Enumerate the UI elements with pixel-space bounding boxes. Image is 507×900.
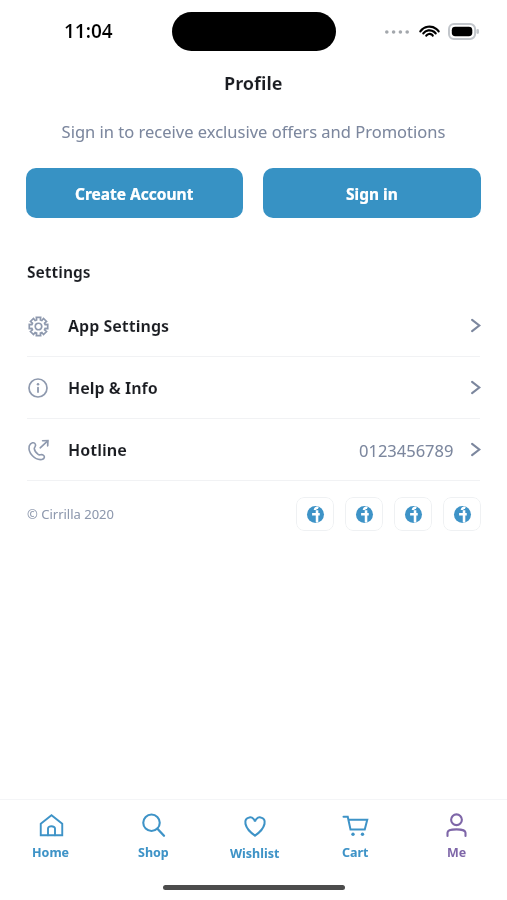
- button[interactable]: Help & Info: [0, 357, 507, 418]
- staticText: Wishlist: [230, 845, 280, 862]
- staticText: Help & Info: [68, 377, 158, 399]
- staticText: Sign in: [346, 183, 398, 204]
- button[interactable]: App Settings: [0, 295, 507, 356]
- button[interactable]: Wishlist: [204, 800, 305, 874]
- button[interactable]: Sign in: [263, 168, 481, 218]
- button[interactable]: Home: [0, 800, 102, 874]
- button[interactable]: Cart: [305, 800, 406, 874]
- staticText: App Settings: [68, 315, 170, 337]
- button[interactable]: Facebook: [345, 497, 383, 531]
- staticText: Profile: [224, 71, 283, 96]
- staticText: © Cirrilla 2020: [27, 505, 114, 523]
- staticText: Sign in to receive exclusive offers and …: [50, 120, 457, 142]
- staticText: 11:04: [64, 18, 113, 44]
- staticText: Settings: [27, 261, 507, 282]
- button[interactable]: Me: [406, 800, 507, 874]
- button[interactable]: Facebook: [394, 497, 432, 531]
- button[interactable]: Hotline: [0, 419, 507, 480]
- button[interactable]: Facebook: [296, 497, 334, 531]
- staticText: 0123456789: [359, 439, 454, 461]
- staticText: Cart: [342, 844, 369, 861]
- button[interactable]: Create Account: [26, 168, 243, 218]
- button[interactable]: Facebook: [443, 497, 481, 531]
- staticText: Me: [447, 844, 467, 861]
- staticText: Create Account: [75, 183, 194, 204]
- staticText: Home: [32, 844, 70, 861]
- staticText: Hotline: [68, 439, 127, 461]
- button[interactable]: Shop: [102, 800, 204, 874]
- staticText: Shop: [138, 844, 169, 861]
